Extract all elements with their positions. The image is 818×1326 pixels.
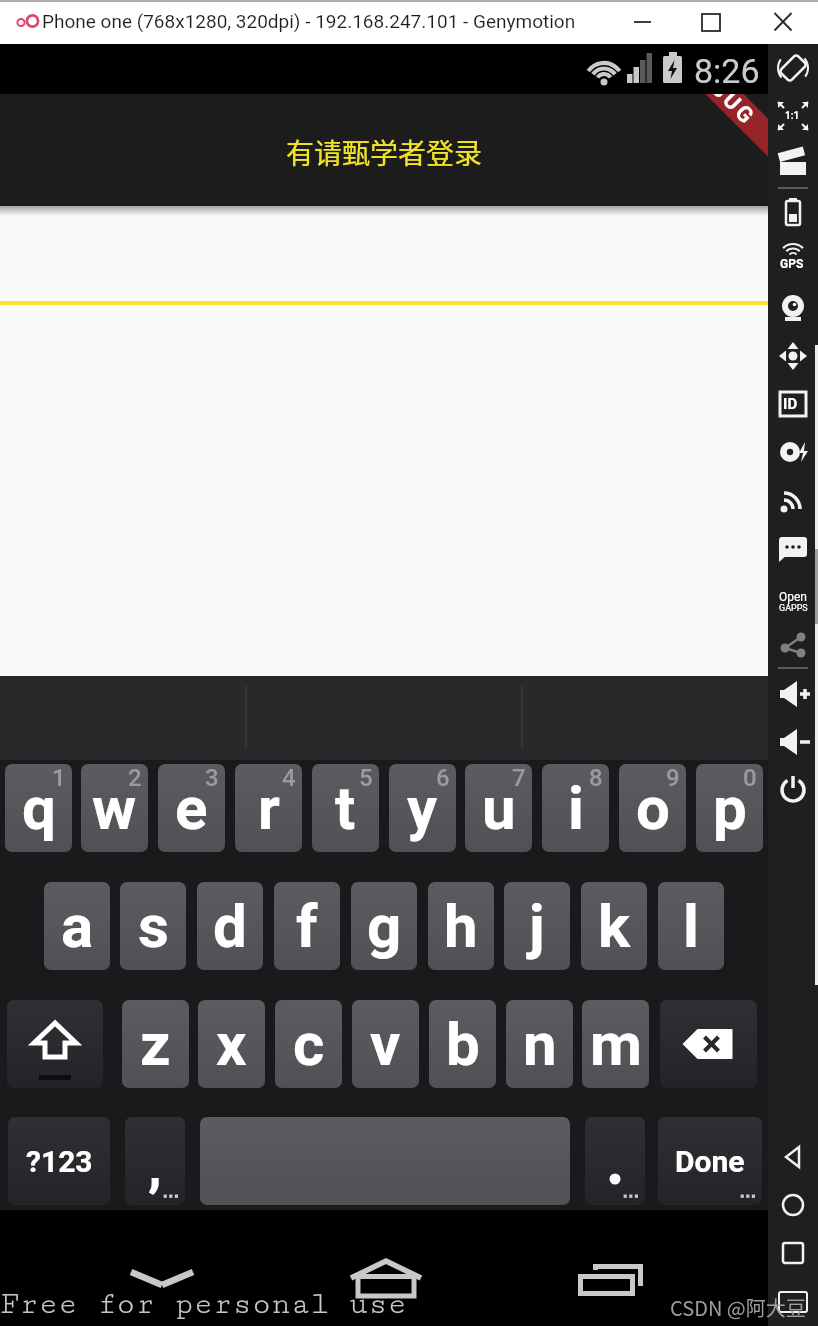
button[interactable] (568, 1246, 648, 1306)
button[interactable] (769, 1282, 817, 1322)
button[interactable]: e (158, 764, 225, 852)
button[interactable] (769, 1185, 817, 1225)
staticText: n (523, 1009, 557, 1079)
staticText: ?123 (26, 1144, 93, 1179)
button[interactable]: Done (658, 1117, 762, 1205)
staticText: Open (779, 590, 807, 604)
button[interactable] (769, 766, 817, 810)
staticText: x (216, 1009, 247, 1079)
staticText: p (713, 773, 747, 843)
button[interactable] (769, 526, 817, 570)
staticText: 2 (128, 764, 142, 792)
button[interactable] (769, 46, 817, 90)
button[interactable]: t (312, 764, 379, 852)
button[interactable]: b (429, 1000, 496, 1088)
button[interactable] (769, 238, 817, 282)
staticText: CSDN @阿大豆 (670, 1293, 806, 1322)
staticText: 8 (589, 764, 603, 792)
staticText: s (138, 891, 169, 961)
button[interactable]: o (619, 764, 686, 852)
staticText: m (590, 1009, 642, 1079)
button[interactable] (769, 190, 817, 234)
button[interactable]: n (506, 1000, 573, 1088)
button[interactable] (585, 1117, 645, 1205)
staticText: Free for personal use (0, 1286, 407, 1321)
button[interactable]: ?123 (8, 1117, 110, 1205)
button[interactable]: k (581, 882, 647, 970)
button[interactable]: s (120, 882, 186, 970)
button[interactable]: j (504, 882, 570, 970)
button[interactable] (622, 4, 662, 40)
staticText: r (258, 773, 280, 843)
button[interactable] (660, 1000, 757, 1088)
button[interactable] (346, 1246, 426, 1306)
button[interactable]: y (389, 764, 456, 852)
staticText: d (213, 891, 247, 961)
staticText: c (293, 1009, 325, 1079)
button[interactable] (691, 4, 731, 40)
button[interactable]: x (198, 1000, 265, 1088)
button[interactable] (200, 1117, 570, 1205)
staticText: b (446, 1009, 480, 1079)
button[interactable]: p (696, 764, 763, 852)
staticText: 3 (205, 764, 219, 792)
button[interactable]: d (197, 882, 263, 970)
button[interactable] (769, 430, 817, 474)
button[interactable]: c (275, 1000, 342, 1088)
staticText: e (175, 773, 208, 843)
button[interactable] (122, 1252, 202, 1312)
staticText: GAPPS (779, 603, 808, 614)
button[interactable] (7, 1000, 103, 1088)
button[interactable] (769, 382, 817, 426)
button[interactable] (769, 1137, 817, 1177)
button[interactable]: l (658, 882, 724, 970)
staticText: 1:1 (785, 110, 800, 122)
button[interactable]: r (235, 764, 302, 852)
button[interactable]: g (351, 882, 417, 970)
staticText: 7 (512, 764, 526, 792)
staticText: v (370, 1009, 401, 1079)
button[interactable]: u (465, 764, 532, 852)
staticText: g (367, 891, 402, 961)
button[interactable]: m (582, 1000, 649, 1088)
staticText: ID (783, 395, 798, 413)
button[interactable]: f (274, 882, 340, 970)
button[interactable] (769, 718, 817, 762)
button[interactable] (769, 670, 817, 714)
staticText: 有请甄学者登录 (286, 132, 483, 173)
button[interactable] (769, 622, 817, 666)
staticText: y (407, 773, 438, 843)
button[interactable]: q (5, 764, 72, 852)
button[interactable] (769, 478, 817, 522)
staticText: 1 (52, 764, 66, 792)
staticText: 4 (282, 764, 296, 792)
staticText: l (683, 891, 699, 961)
staticText: f (296, 891, 318, 961)
staticText: 0 (743, 764, 757, 792)
staticText: , (148, 1133, 162, 1199)
button[interactable] (769, 142, 817, 186)
button[interactable]: v (352, 1000, 419, 1088)
button[interactable] (769, 94, 817, 138)
staticText: i (568, 773, 584, 843)
button[interactable] (763, 4, 803, 40)
button[interactable] (769, 334, 817, 378)
staticText: a (61, 891, 94, 961)
button[interactable]: a (44, 882, 110, 970)
staticText: z (140, 1009, 171, 1079)
button[interactable] (769, 286, 817, 330)
button[interactable]: z (122, 1000, 189, 1088)
button[interactable] (769, 574, 817, 618)
staticText: j (529, 891, 545, 961)
button[interactable]: i (542, 764, 609, 852)
button[interactable]: h (428, 882, 494, 970)
button[interactable]: , (125, 1117, 185, 1205)
button[interactable] (769, 1233, 817, 1273)
staticText: GPS (780, 257, 804, 271)
staticText: h (444, 891, 478, 961)
staticText: 5 (359, 764, 373, 792)
staticText: Phone one (768x1280, 320dpi) - 192.168.2… (42, 10, 576, 32)
button[interactable]: w (81, 764, 148, 852)
staticText: k (598, 891, 631, 961)
staticText: 9 (666, 764, 680, 792)
